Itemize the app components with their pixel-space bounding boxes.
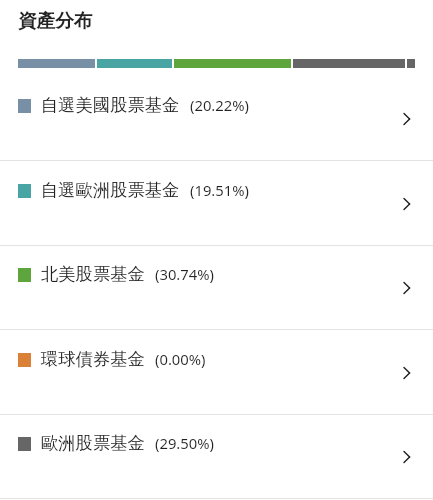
button[interactable]: 歐洲股票基金 [0, 415, 433, 498]
other: Open details [404, 366, 416, 380]
other: Open details [404, 281, 416, 295]
other: Open details [404, 450, 416, 464]
button[interactable]: 環球債券基金 [0, 331, 433, 414]
staticText: 自選美國股票基金 [41, 94, 180, 116]
button[interactable]: 自選美國股票基金 [0, 77, 433, 160]
button[interactable]: 自選歐洲股票基金 [0, 162, 433, 245]
staticText: (30.74%) [155, 264, 214, 284]
staticText: 自選歐洲股票基金 [41, 179, 180, 201]
staticText: 資產分布 [18, 9, 93, 32]
staticText: (0.00%) [155, 349, 206, 369]
other: Open details [404, 112, 416, 126]
staticText: (29.50%) [155, 433, 214, 453]
staticText: (20.22%) [190, 95, 249, 115]
other: Open details [404, 197, 416, 211]
staticText: 環球債券基金 [41, 348, 145, 370]
staticText: 北美股票基金 [41, 263, 145, 285]
button[interactable]: 北美股票基金 [0, 246, 433, 329]
staticText: 歐洲股票基金 [41, 432, 145, 454]
staticText: (19.51%) [190, 180, 249, 200]
